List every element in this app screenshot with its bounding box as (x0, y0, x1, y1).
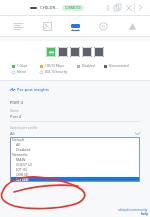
staticText: 1 Gbps (17, 64, 28, 68)
staticText: MAIN (16, 157, 26, 162)
button[interactable]: Tools (122, 16, 142, 36)
staticText: IOT (5) (16, 167, 27, 172)
staticText: All (16, 142, 21, 147)
button[interactable]: Per-port insights (0, 81, 150, 95)
button[interactable]: GUEST (2) (10, 162, 140, 167)
staticText: Per-port insights (17, 87, 49, 92)
staticText: Disabled (16, 147, 31, 152)
staticText: CONNECTED (65, 6, 81, 10)
staticText: Mirror (17, 70, 27, 74)
button[interactable]: Networks (10, 152, 140, 157)
staticText: GUEST (2) (16, 162, 32, 167)
staticText: UDR (4) (16, 172, 29, 177)
button[interactable]: Port (82, 47, 92, 57)
button[interactable]: Port (94, 47, 104, 57)
button[interactable]: Close (123, 2, 134, 13)
button[interactable]: Active port (46, 47, 56, 57)
staticText: CHILDREN ROOM SW... (40, 5, 59, 11)
button[interactable]: Overview (8, 16, 28, 36)
button[interactable]: CONNECTED (62, 5, 84, 11)
button[interactable]: Port (58, 47, 68, 57)
staticText: Switch port profile (10, 126, 38, 130)
staticText: Networks (12, 152, 28, 157)
button[interactable]: All (10, 142, 140, 147)
button[interactable]: Default (10, 137, 140, 142)
button[interactable]: Port (70, 47, 80, 57)
staticText: Disabled (82, 64, 95, 68)
button[interactable]: MAIN (10, 157, 140, 162)
button[interactable]: More options (103, 3, 112, 12)
staticText: PORT 4 (10, 100, 23, 105)
button[interactable]: Expand (135, 2, 146, 13)
staticText: Port 4 (10, 114, 22, 119)
button[interactable]: All (10, 131, 140, 136)
staticText: Default (12, 137, 25, 142)
button[interactable]: Ports (65, 16, 85, 36)
button[interactable]: IoT (33) (10, 177, 140, 182)
staticText: ubiquiti-community (118, 208, 148, 212)
button[interactable]: Details (37, 16, 57, 36)
staticText: help (141, 212, 148, 216)
staticText: IoT (33) (16, 177, 29, 182)
button[interactable]: Duplicate (112, 2, 123, 13)
staticText: 100/10 Mbps (45, 64, 64, 68)
staticText: All (10, 131, 15, 136)
button[interactable]: Settings (93, 16, 113, 36)
button[interactable]: UDR (4) (10, 172, 140, 177)
staticText: 802.1X Security (45, 70, 68, 74)
staticText: Name (10, 109, 19, 113)
button[interactable]: IOT (5) (10, 167, 140, 172)
staticText: Disconnected (109, 64, 129, 68)
button[interactable]: Disabled (10, 147, 140, 152)
